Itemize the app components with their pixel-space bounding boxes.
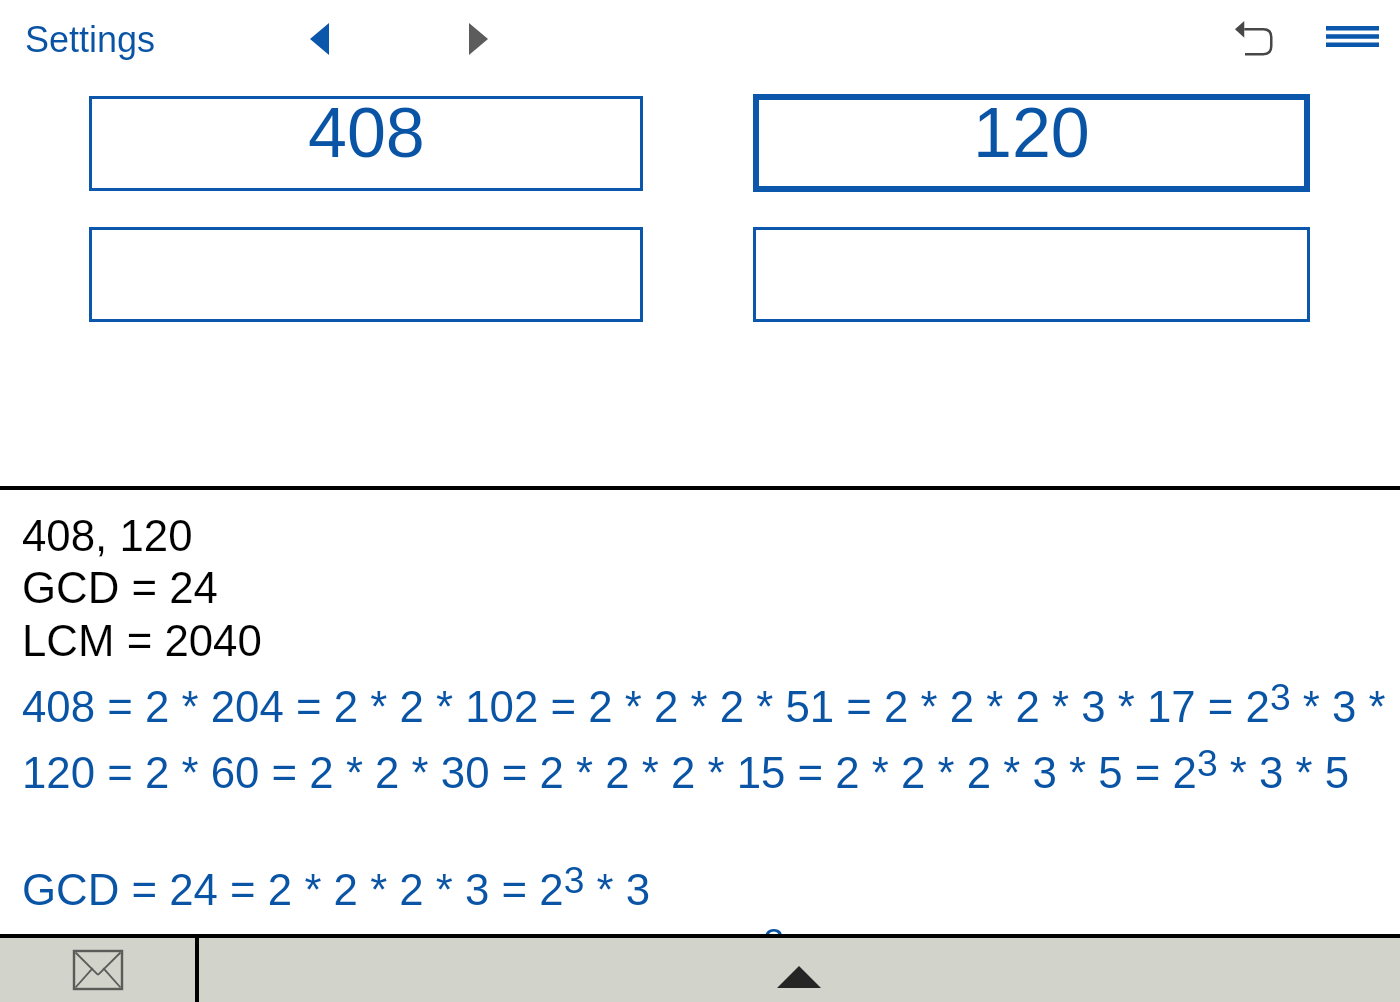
staticText: Settings xyxy=(25,19,156,59)
button[interactable]: 408 xyxy=(89,96,643,191)
staticText: 408 = 2 * 204 = 2 * 2 * 102 = 2 * 2 * 2 … xyxy=(22,676,1400,731)
staticText: 408 xyxy=(308,94,425,172)
staticText: 120 = 2 * 60 = 2 * 2 * 30 = 2 * 2 * 2 * … xyxy=(22,742,1350,797)
button[interactable] xyxy=(753,227,1310,322)
staticText: LCM = 2040 = 2 * 2 * 2 * 3 * 5 * 17 = 23… xyxy=(22,921,1006,976)
button[interactable]: Mail xyxy=(0,937,195,1002)
button[interactable] xyxy=(89,227,643,322)
button[interactable]: 120 xyxy=(753,94,1310,192)
staticText: GCD = 24 = 2 * 2 * 2 * 3 = 23 * 3 xyxy=(22,859,651,914)
staticText: LCM = 2040 xyxy=(22,616,262,665)
button[interactable]: Undo xyxy=(1219,8,1287,64)
button[interactable]: Settings xyxy=(25,19,156,59)
button[interactable]: Previous xyxy=(293,9,345,69)
staticText: 408, 120 xyxy=(22,511,193,560)
staticText: 120 xyxy=(973,94,1090,172)
button[interactable]: Scroll up xyxy=(199,937,1400,1002)
staticText: GCD = 24 xyxy=(22,563,218,612)
button[interactable]: Next xyxy=(452,9,504,69)
button[interactable]: Menu xyxy=(1312,6,1392,66)
